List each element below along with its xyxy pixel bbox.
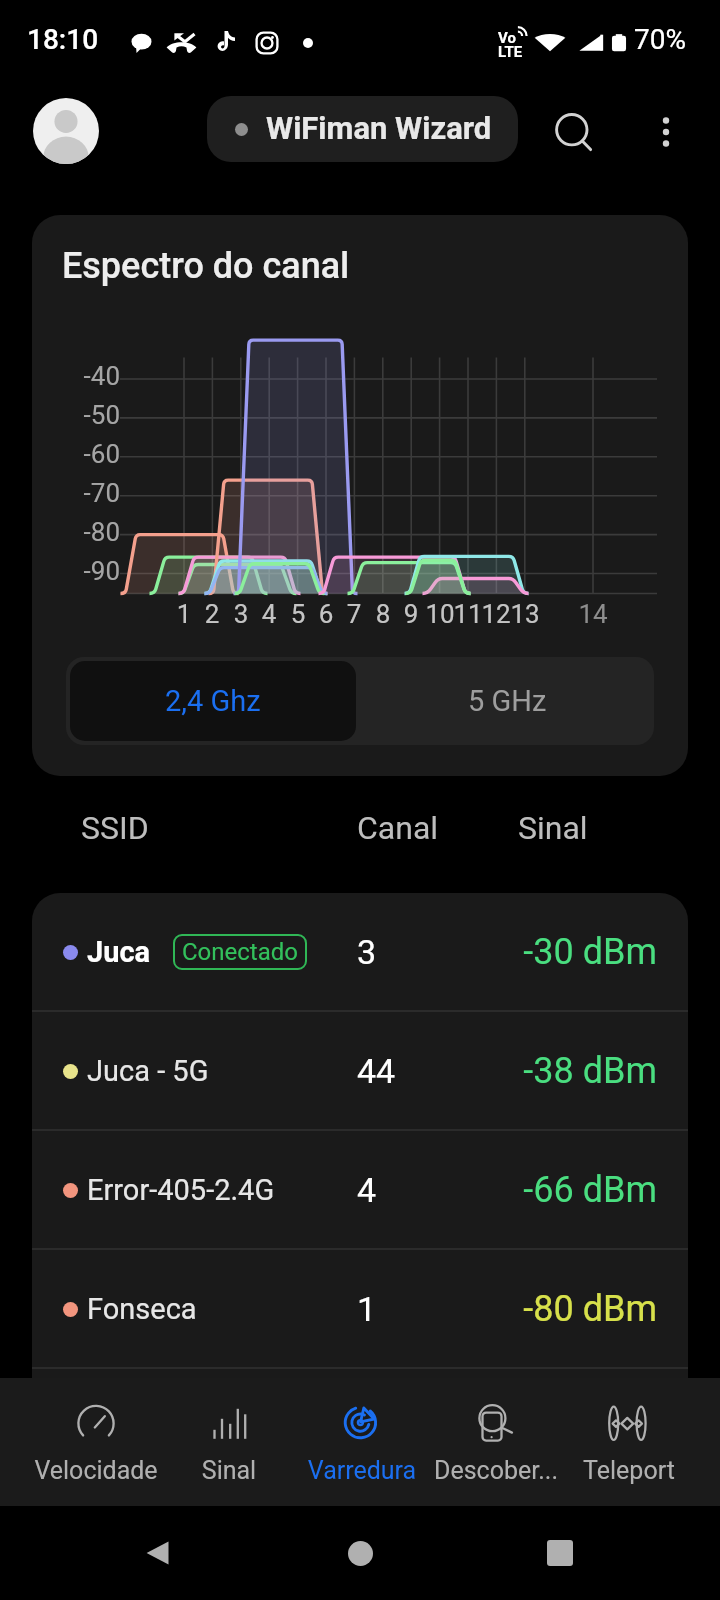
staticText: 12 [476, 599, 516, 629]
staticText: -80 dBm [382, 1288, 657, 1330]
staticText: Juca - 5G [87, 1054, 209, 1088]
button[interactable]: Sinal [163, 1378, 295, 1506]
staticText: 14 [573, 599, 613, 629]
button[interactable]: Teleport [563, 1378, 695, 1506]
staticText: -50 [52, 400, 120, 430]
staticText: Juca [87, 935, 151, 969]
staticText: 7 [334, 599, 374, 629]
staticText: -90 [52, 556, 120, 586]
staticText: 5 [278, 599, 318, 629]
staticText: 18:10 [27, 23, 99, 56]
staticText: LTE [498, 43, 523, 61]
staticText: 3 [221, 599, 261, 629]
staticText: -70 [52, 478, 120, 508]
staticText: Vo [498, 29, 516, 47]
staticText: 44 [357, 1051, 396, 1091]
button[interactable]: WiFiman Wizard [207, 96, 518, 162]
staticText: Conectado [182, 938, 298, 966]
button[interactable]: Account [33, 98, 99, 164]
staticText: 6 [306, 599, 346, 629]
staticText: Espectro do canal [62, 245, 350, 287]
staticText: 2 [192, 599, 232, 629]
button[interactable]: 2,4 Ghz [70, 661, 356, 741]
button[interactable]: More options [638, 104, 694, 160]
button[interactable]: Home [300, 1506, 420, 1600]
staticText: -60 [52, 439, 120, 469]
staticText: Descober... [430, 1456, 562, 1485]
staticText: Fonseca [87, 1292, 197, 1326]
button[interactable]: Fonseca [32, 1250, 688, 1367]
staticText: WiFiman Wizard [266, 110, 492, 146]
button[interactable]: Error-405-2.4G [32, 1131, 688, 1248]
staticText: -38 dBm [382, 1050, 657, 1092]
staticText: Velocidade [30, 1456, 162, 1485]
button[interactable]: 5 GHz [360, 657, 654, 745]
button[interactable]: Search [546, 104, 602, 160]
staticText: 8 [363, 599, 403, 629]
button[interactable]: Back [98, 1506, 218, 1600]
staticText: -66 dBm [382, 1169, 657, 1211]
staticText: 70% [634, 23, 686, 56]
staticText: 1 [357, 1289, 377, 1329]
staticText: 10 [420, 599, 460, 629]
staticText: Sinal [518, 809, 588, 847]
staticText: 13 [505, 599, 545, 629]
staticText: SSID [81, 809, 149, 847]
staticText: 2,4 Ghz [165, 684, 261, 718]
button[interactable]: Varredura [296, 1378, 428, 1506]
button[interactable]: Juca [32, 893, 688, 1010]
staticText: -40 [52, 361, 120, 391]
staticText: 9 [391, 599, 431, 629]
staticText: -80 [52, 517, 120, 547]
staticText: 3 [357, 932, 377, 972]
staticText: 4 [357, 1170, 377, 1210]
staticText: 5 GHz [468, 684, 547, 718]
button[interactable]: Juca - 5G [32, 1012, 688, 1129]
button[interactable]: Velocidade [30, 1378, 162, 1506]
staticText: 4 [249, 599, 289, 629]
staticText: Teleport [563, 1456, 695, 1485]
staticText: Canal [357, 809, 439, 847]
staticText: 11 [448, 599, 488, 629]
staticText: -30 dBm [382, 931, 657, 973]
staticText: Error-405-2.4G [87, 1173, 275, 1207]
button[interactable]: Descober... [430, 1378, 562, 1506]
button[interactable]: Recents [500, 1506, 620, 1600]
staticText: 1 [164, 599, 204, 629]
staticText: Sinal [163, 1456, 295, 1485]
staticText: Varredura [296, 1456, 428, 1485]
